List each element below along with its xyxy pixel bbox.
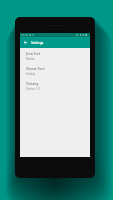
staticText: Tentang — [26, 82, 39, 86]
other: Back — [23, 40, 28, 45]
staticText: Ukuran Font — [26, 67, 45, 71]
staticText: Version 1.0 — [26, 87, 40, 91]
staticText: Roboto — [26, 57, 35, 61]
staticText: Settings — [31, 41, 44, 45]
button[interactable]: Jenis Font — [20, 48, 90, 63]
button[interactable]: Back — [20, 37, 90, 48]
button[interactable]: Ukuran Font — [20, 63, 90, 78]
button[interactable]: Tentang — [20, 78, 90, 93]
staticText: Sedang — [26, 72, 36, 76]
staticText: Jenis Font — [26, 52, 41, 56]
